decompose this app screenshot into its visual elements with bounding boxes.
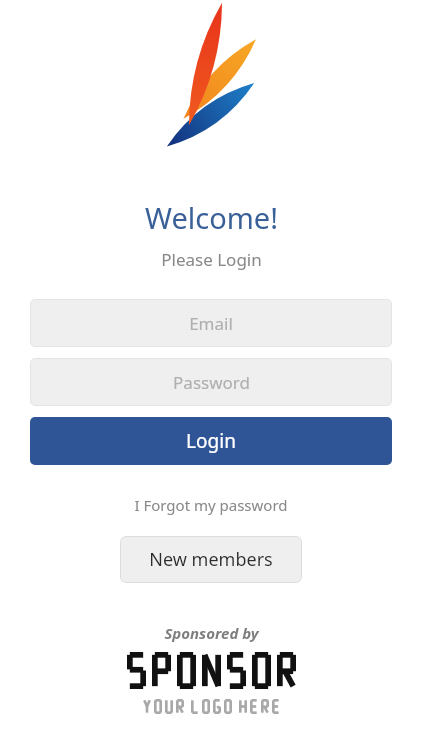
button[interactable]: New members (120, 536, 302, 583)
staticText: Sponsored by (164, 623, 259, 643)
button[interactable]: Email (30, 299, 392, 347)
staticText: New members (149, 547, 273, 572)
staticText: Email (189, 312, 233, 335)
button[interactable]: Password (30, 358, 392, 406)
button[interactable]: Login (30, 417, 392, 465)
button[interactable]: I Forgot my password (134, 495, 288, 515)
staticText: Please Login (161, 248, 262, 271)
staticText: I Forgot my password (134, 495, 288, 515)
staticText: Welcome! (145, 198, 278, 237)
staticText: Login (186, 428, 236, 454)
staticText: Password (173, 371, 250, 394)
